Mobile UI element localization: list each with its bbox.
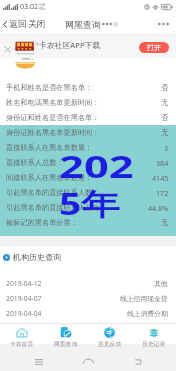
button[interactable]: 2019-04-12 [0,276,176,291]
staticText: 直接联系人总数： [6,158,64,167]
staticText: 4145 [152,173,169,183]
staticText: 引起黑名单的直接联系人占比： [6,203,107,212]
staticText: 身份证和姓名是否在黑名单： [6,113,100,122]
staticText: 202 [59,146,134,187]
staticText: 姓名和电话黑名单更新时间： [6,98,100,107]
staticText: 5年 [59,183,121,224]
staticText: 44.8% [148,203,169,213]
button[interactable]: 返回 [2,16,28,33]
button[interactable]: 打开 [139,42,169,53]
staticText: 172 [156,188,169,198]
staticText: 机构历史查询 [13,252,61,262]
button[interactable]: More options [102,19,118,29]
button[interactable]: 身份证和姓名是否在黑名单： [0,110,176,125]
button[interactable]: 意见反馈 [88,324,132,352]
button[interactable]: 直接联系人总数： [0,155,176,170]
button[interactable]: 引起黑名单的直接联系人数： [0,185,176,200]
button[interactable]: 身份证姓名黑名单更新时间： [0,125,176,140]
staticText: 网黑查询 [54,340,78,347]
staticText: 无 [161,98,169,107]
staticText: 3 [164,143,169,153]
staticText: 384 [156,158,169,168]
button[interactable]: 网黑查询 [44,324,88,352]
staticText: 2019-04-12 [6,279,42,288]
staticText: 引起黑名单的直接联系人数： [6,188,100,197]
staticText: 卡农社区APP下载 [39,40,101,51]
staticText: 否 [161,83,169,92]
staticText: 打开 [147,43,161,52]
button[interactable]: 被标记的黑名单分类： [0,215,176,230]
button[interactable]: Home [77,352,99,371]
staticText: 意见反馈 [98,340,122,347]
button[interactable]: 历史记录 [132,324,176,352]
button[interactable]: Recents [28,352,50,371]
staticText: 直接联系人在黑名单数量： [6,143,93,152]
staticText: 历史记录 [142,340,166,347]
button[interactable]: 2019-04-04 [0,306,176,321]
staticText: 返回 [9,19,27,30]
staticText: 2019-04-07 [6,294,42,303]
staticText: 否 [161,113,169,122]
staticText: 3.00 [39,3,46,7]
staticText: 线上信用现金贷 [120,294,168,303]
staticText: 间接联系人在黑名单数量： [6,173,93,182]
staticText: 手机和姓名是否在黑名单： [6,83,93,92]
staticText: 被标记的黑名单分类： [6,218,78,227]
staticText: 03:02 [20,2,38,12]
staticText: 身份证姓名黑名单更新时间： [6,128,100,137]
staticText: 无 [161,218,169,227]
button[interactable]: 关闭 [27,16,47,33]
staticText: 线上消费分期 [127,309,168,318]
button[interactable]: 手机和姓名是否在黑名单： [0,80,176,95]
button[interactable]: 引起黑名单的直接联系人占比： [0,200,176,215]
staticText: 其他 [154,279,168,288]
button[interactable]: Back [127,352,149,371]
staticText: 卡农首页 [10,340,34,347]
button[interactable]: 直接联系人在黑名单数量： [0,140,176,155]
staticText: 2019-04-04 [6,309,42,318]
staticText: 网黑查询 [65,19,101,30]
button[interactable]: Menu [154,17,172,31]
staticText: 无 [161,128,169,137]
button[interactable]: 卡农首页 [0,324,44,352]
staticText: KB/s [39,7,46,11]
button[interactable]: Close banner [1,43,13,55]
button[interactable]: 2019-04-07 [0,291,176,306]
button[interactable]: 间接联系人在黑名单数量： [0,170,176,185]
staticText: 关闭 [28,19,46,30]
button[interactable]: 姓名和电话黑名单更新时间： [0,95,176,110]
